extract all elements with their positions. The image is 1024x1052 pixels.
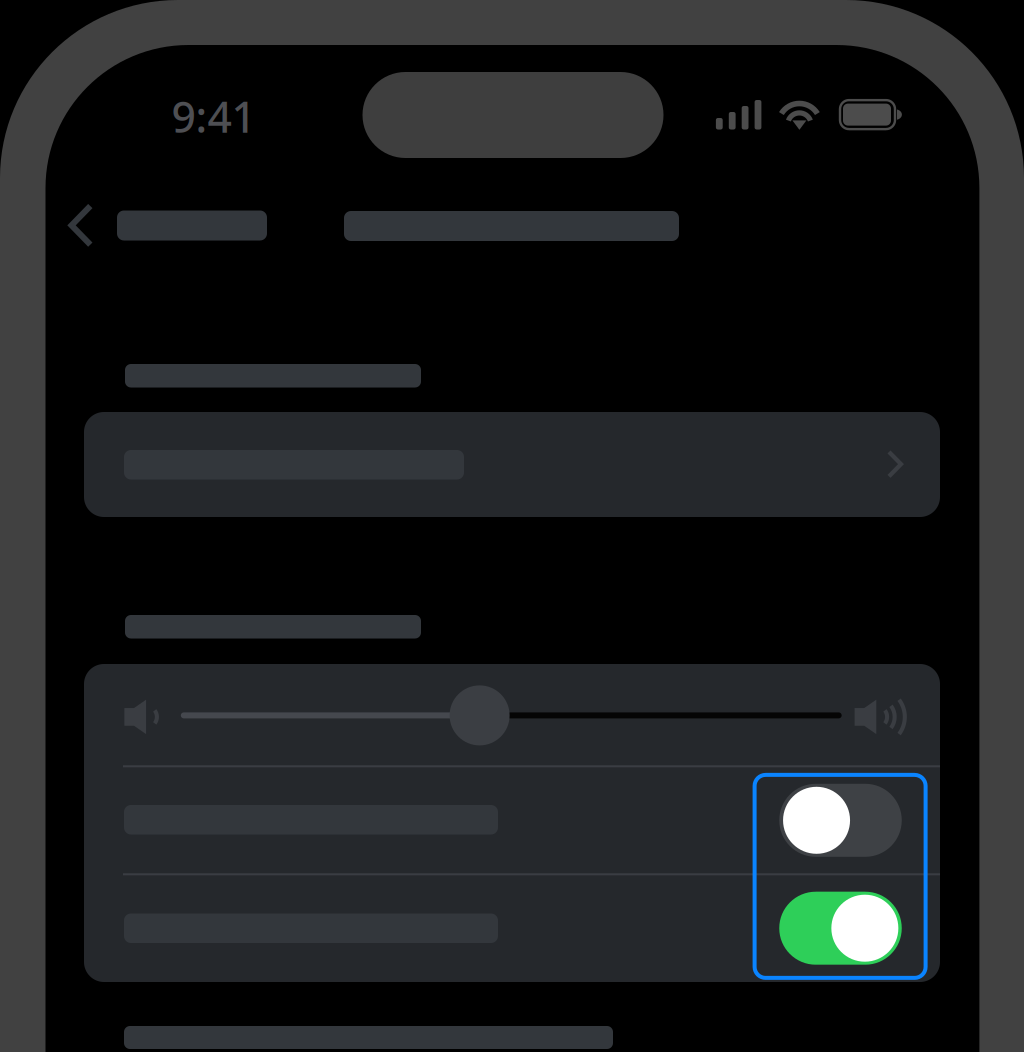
button[interactable]: Switch, on [779,892,902,965]
button[interactable]: Open [84,412,940,517]
button[interactable]: Switch, off [779,784,902,857]
button[interactable]: Back [45,190,267,260]
staticText: 9:41 [172,88,256,145]
